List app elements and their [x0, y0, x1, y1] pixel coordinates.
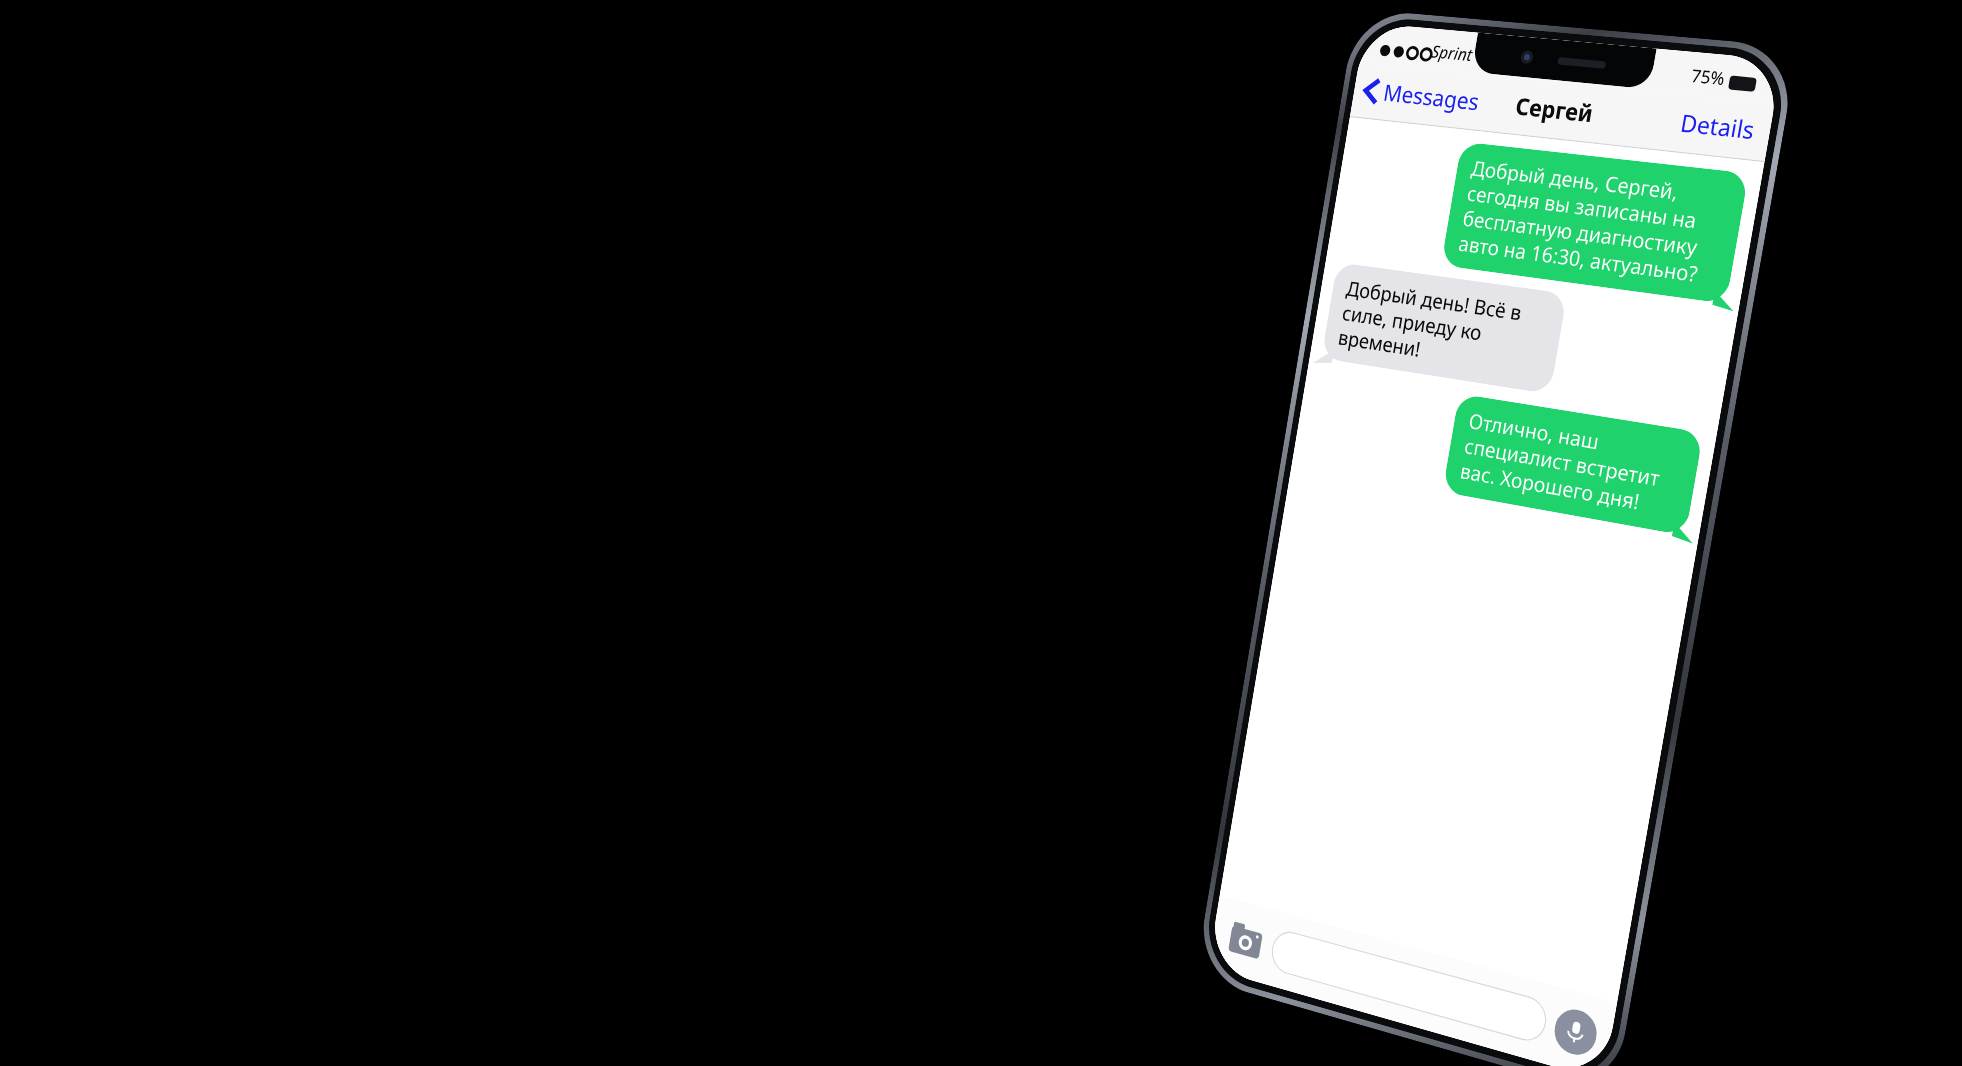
button[interactable]: Messages [1360, 63, 1484, 130]
button[interactable]: Message input field [1269, 927, 1550, 1045]
button[interactable]: Details [1676, 94, 1760, 159]
button[interactable]: Record audio message [1551, 1005, 1600, 1060]
button[interactable]: Добрый день, Сергей, сегодня вы записаны… [1441, 141, 1749, 304]
staticText: Messages [1381, 77, 1482, 118]
staticText: Добрый день! Всё в силе, приеду ко време… [1336, 274, 1551, 381]
staticText: Добрый день, Сергей, сегодня вы записаны… [1457, 154, 1731, 291]
staticText: Sprint [1430, 39, 1475, 66]
staticText: Отлично, наш специалист встретит вас. Хо… [1458, 406, 1686, 522]
staticText: Details [1678, 107, 1758, 147]
staticText: 75% [1690, 63, 1727, 90]
button[interactable]: Take photo [1222, 912, 1270, 969]
button[interactable]: Добрый день! Всё в силе, приеду ко време… [1321, 262, 1567, 394]
staticText: Сергей [1513, 90, 1596, 130]
button[interactable]: Отлично, наш специалист встретит вас. Хо… [1442, 393, 1703, 536]
